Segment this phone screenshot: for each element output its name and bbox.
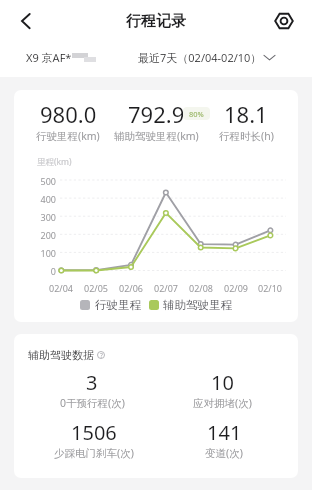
staticText: 500 <box>40 175 56 187</box>
staticText: 3 <box>86 369 98 396</box>
staticText: 10 <box>211 369 234 396</box>
staticText: 141 <box>207 419 242 446</box>
staticText: 少踩电门刹车(次) <box>54 446 134 460</box>
staticText: 行驶里程(km) <box>36 129 100 143</box>
staticText: 行程时长(h) <box>219 129 274 143</box>
staticText: 0 <box>50 265 56 277</box>
staticText: 18.1 <box>224 99 268 129</box>
staticText: 行程记录 <box>126 12 186 31</box>
staticText: 变道(次) <box>205 446 243 460</box>
button[interactable]: Back <box>8 7 36 35</box>
staticText: 应对拥堵(次) <box>193 396 252 410</box>
staticText: X9 京AF* <box>26 50 72 65</box>
staticText: 里程(km) <box>37 156 72 168</box>
staticText: 02/07 <box>154 282 178 294</box>
staticText: 0干预行程(次) <box>60 396 125 410</box>
staticText: 02/09 <box>224 282 248 294</box>
staticText: 02/04 <box>49 282 73 294</box>
staticText: 02/05 <box>84 282 108 294</box>
staticText: ? <box>100 351 103 359</box>
button[interactable]: Settings <box>269 6 298 35</box>
staticText: 02/08 <box>189 282 213 294</box>
staticText: 100 <box>40 247 56 259</box>
staticText: 200 <box>40 229 56 241</box>
staticText: 辅助驾驶数据 <box>28 348 94 362</box>
staticText: 400 <box>40 193 56 205</box>
button[interactable]: X9 京AF* <box>26 47 97 68</box>
staticText: 行驶里程 <box>95 298 141 311</box>
button[interactable]: 行驶里程 <box>80 298 232 311</box>
staticText: 辅助驾驶里程 <box>163 298 232 311</box>
button[interactable]: 最近7天（02/04-02/10） <box>138 47 275 68</box>
staticText: 80% <box>189 109 204 119</box>
staticText: 1506 <box>71 419 117 446</box>
staticText: 最近7天（02/04-02/10） <box>138 50 262 65</box>
staticText: 980.0 <box>40 99 97 129</box>
staticText: 300 <box>40 211 56 223</box>
staticText: 02/06 <box>119 282 143 294</box>
button[interactable]: 辅助驾驶数据 <box>28 348 105 362</box>
staticText: 792.9 <box>128 99 185 129</box>
staticText: 02/10 <box>258 282 282 294</box>
staticText: 辅助驾驶里程(km) <box>114 129 199 143</box>
